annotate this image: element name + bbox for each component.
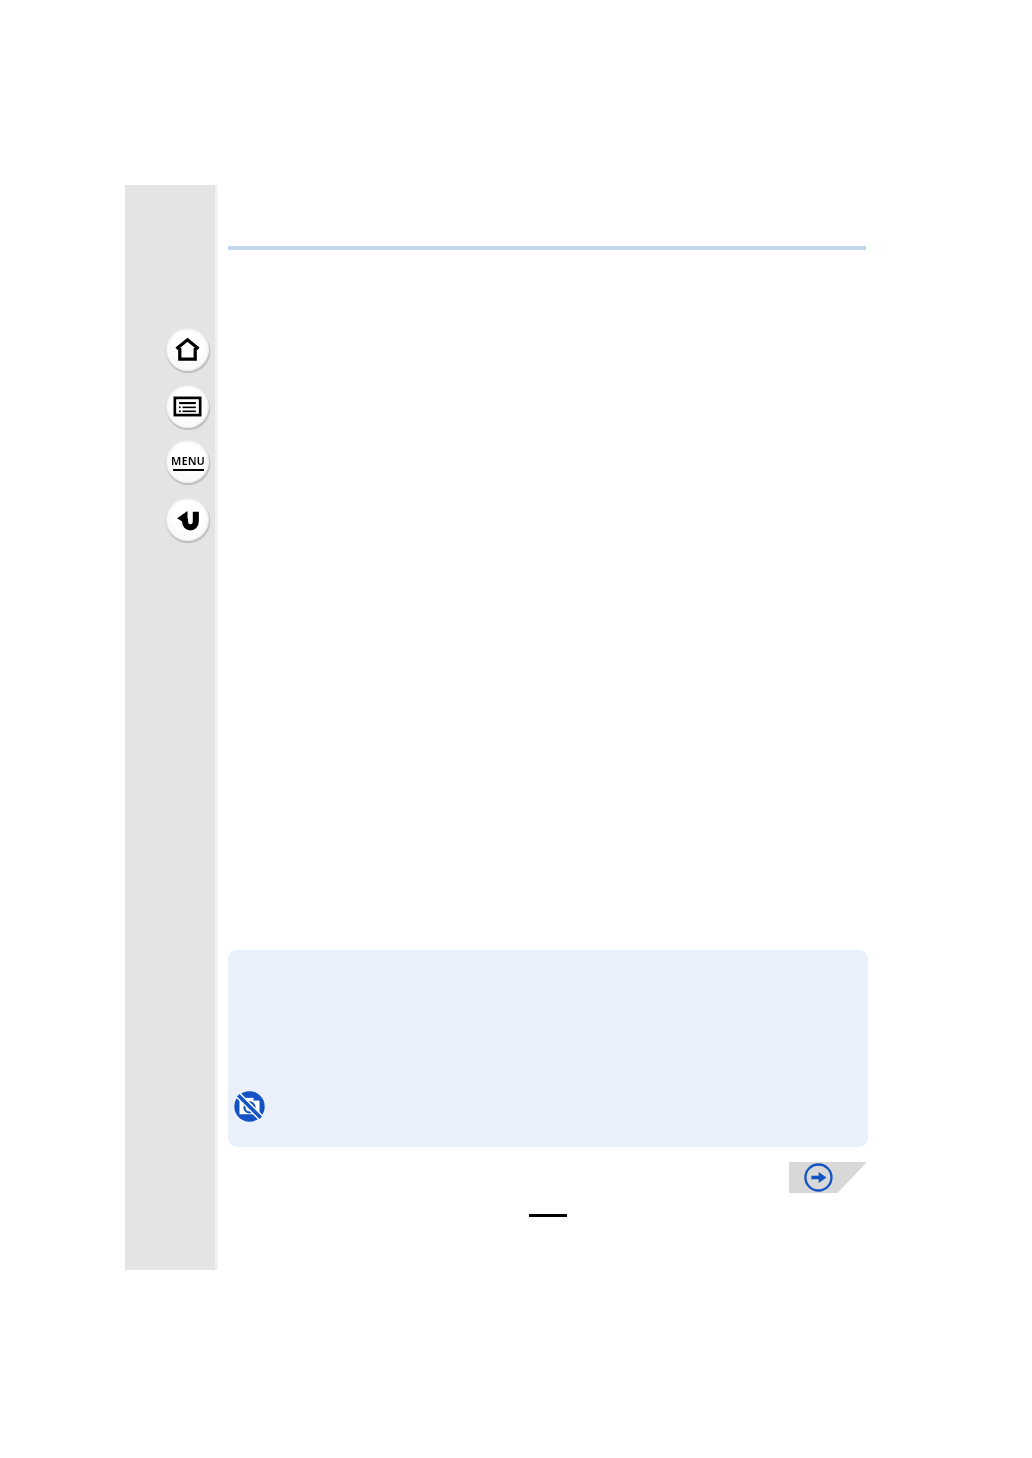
other: Not available [233, 1090, 266, 1123]
button[interactable]: MENU [165, 439, 210, 484]
button[interactable]: Home [165, 327, 210, 372]
staticText: MENU [171, 453, 205, 468]
button[interactable]: Back [165, 497, 210, 542]
button[interactable]: Contents list [165, 384, 210, 429]
button[interactable]: Next page [789, 1162, 867, 1193]
